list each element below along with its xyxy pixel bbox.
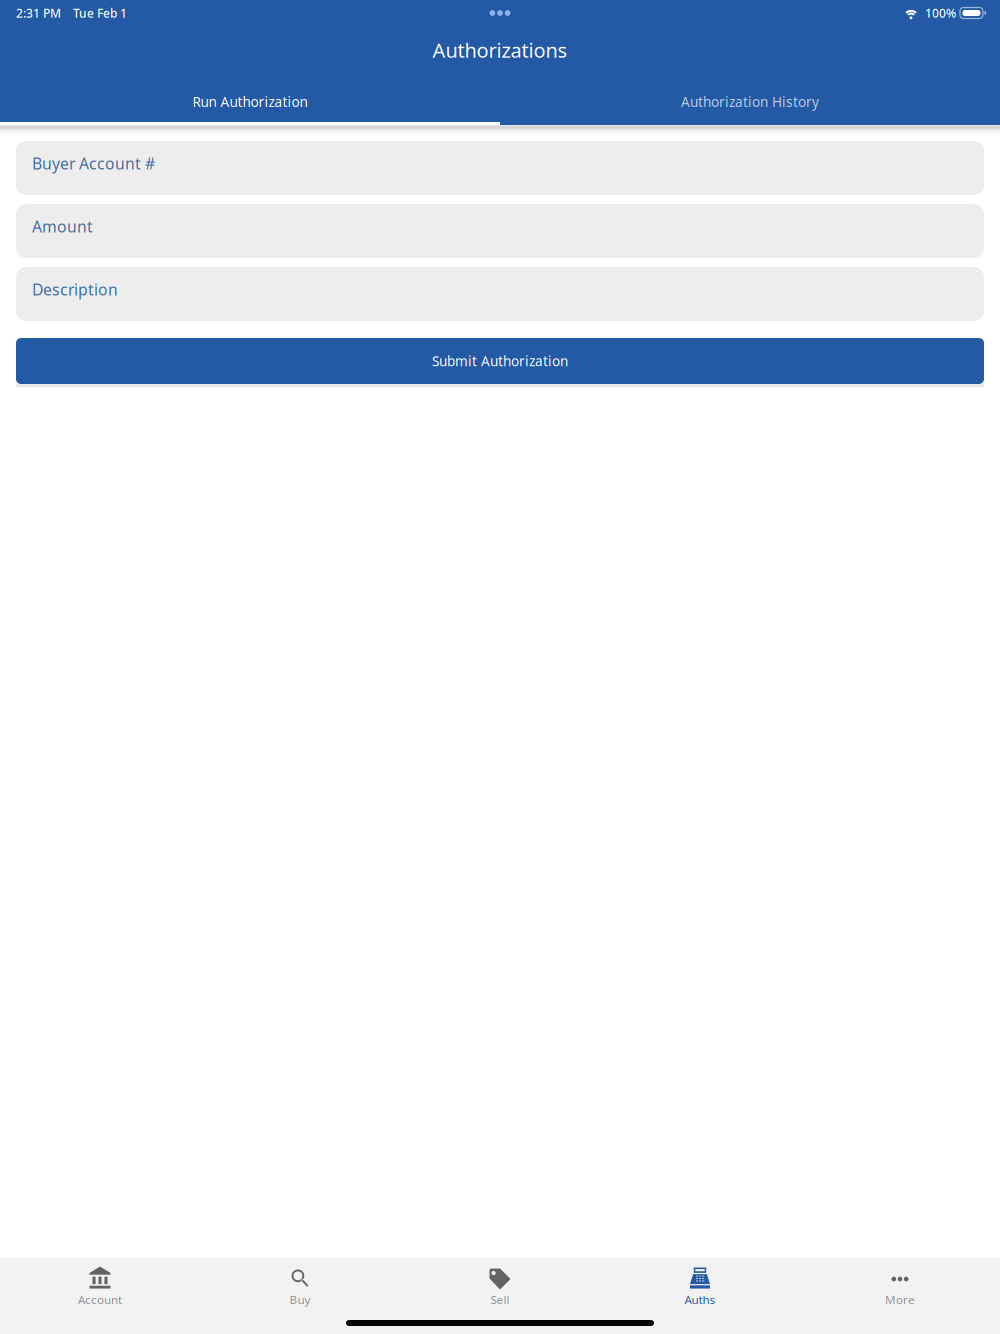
staticText: 2:31 PM	[16, 5, 61, 21]
button[interactable]: Buy	[200, 1265, 400, 1305]
staticText: Amount	[32, 216, 93, 237]
staticText: Buy	[289, 1292, 310, 1307]
button[interactable]: Authorization History	[500, 74, 1000, 125]
staticText: Authorizations	[432, 36, 567, 64]
staticText: Account	[78, 1292, 122, 1307]
staticText: Description	[32, 279, 118, 300]
staticText: Sell	[490, 1292, 509, 1307]
button[interactable]: Auths	[600, 1265, 800, 1305]
button[interactable]: Submit Authorization	[16, 338, 984, 384]
button[interactable]: More	[800, 1265, 1000, 1305]
staticText: Tue Feb 1	[73, 5, 127, 21]
staticText: Run Authorization	[192, 92, 307, 111]
button[interactable]: Account	[0, 1265, 200, 1305]
staticText: Submit Authorization	[432, 352, 568, 370]
button[interactable]: Run Authorization	[0, 74, 500, 125]
button[interactable]: Sell	[400, 1265, 600, 1305]
staticText: Buyer Account #	[32, 153, 155, 174]
staticText: Auths	[684, 1292, 715, 1307]
staticText: More	[885, 1292, 915, 1307]
staticText: Authorization History	[681, 92, 819, 111]
staticText: 100%	[925, 5, 956, 21]
